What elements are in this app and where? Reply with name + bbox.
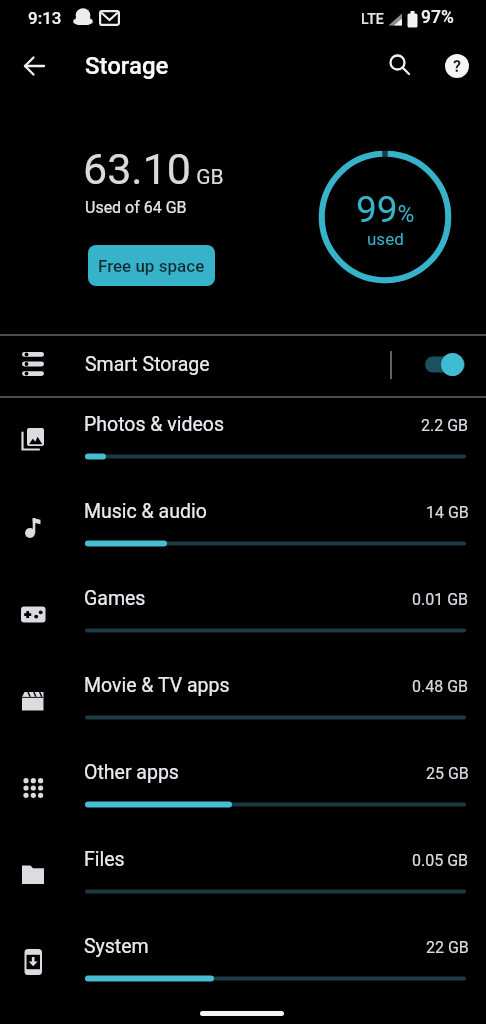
button[interactable]: ?	[437, 46, 477, 86]
button[interactable]	[14, 46, 54, 86]
staticText: Free up space	[98, 256, 205, 276]
staticText: Music & audio	[84, 500, 207, 523]
staticText: used	[367, 229, 404, 249]
staticText: LTE	[361, 11, 384, 27]
staticText: Photos & videos	[84, 413, 225, 436]
staticText: System	[84, 935, 149, 958]
staticText: 0.05 GB	[412, 851, 469, 870]
staticText: Storage	[85, 52, 169, 80]
staticText: 97%	[421, 7, 454, 28]
staticText: Smart Storage	[85, 353, 210, 376]
button[interactable]: System	[0, 919, 486, 1006]
staticText: Other apps	[84, 761, 179, 784]
staticText: 0.01 GB	[412, 590, 469, 609]
staticText: 14 GB	[426, 503, 469, 522]
button[interactable]: Files	[0, 832, 486, 919]
staticText: Games	[84, 587, 146, 610]
staticText: Used of 64 GB	[85, 198, 187, 217]
button[interactable]: Free up space	[88, 245, 215, 286]
staticText: 0.48 GB	[412, 677, 469, 696]
button[interactable]: Smart Storage	[0, 336, 486, 396]
button[interactable]	[380, 45, 420, 85]
button[interactable]: Photos & videos	[0, 397, 486, 484]
staticText: 9:13	[28, 8, 62, 28]
button[interactable]: Games	[0, 571, 486, 658]
button[interactable]: Music & audio	[0, 484, 486, 571]
staticText: 22 GB	[426, 938, 469, 957]
staticText: 25 GB	[426, 764, 469, 783]
button[interactable]: Other apps	[0, 745, 486, 832]
staticText: 63.10 GB	[83, 144, 224, 194]
staticText: ?	[453, 57, 461, 76]
staticText: Files	[84, 848, 125, 871]
button[interactable]	[418, 344, 474, 388]
staticText: Movie & TV apps	[84, 674, 230, 697]
button[interactable]: Movie & TV apps	[0, 658, 486, 745]
staticText: 2.2 GB	[421, 416, 469, 435]
staticText: 99%	[356, 188, 415, 231]
